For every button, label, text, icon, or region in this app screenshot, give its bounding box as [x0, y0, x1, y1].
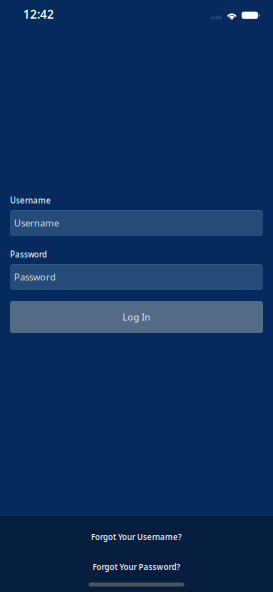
- button[interactable]: Password: [10, 264, 263, 290]
- staticText: Log In: [122, 311, 150, 323]
- button[interactable]: Log In: [10, 301, 263, 333]
- staticText: Password: [14, 271, 56, 283]
- button[interactable]: Forgot Your Password?: [0, 560, 273, 574]
- staticText: Password: [10, 249, 47, 260]
- staticText: Username: [10, 195, 51, 206]
- staticText: Forgot Your Password?: [92, 562, 180, 572]
- staticText: Username: [14, 217, 59, 229]
- staticText: Forgot Your Username?: [91, 532, 182, 542]
- staticText: 12:42: [23, 6, 54, 22]
- button[interactable]: Forgot Your Username?: [0, 530, 273, 544]
- button[interactable]: Username: [10, 210, 263, 236]
